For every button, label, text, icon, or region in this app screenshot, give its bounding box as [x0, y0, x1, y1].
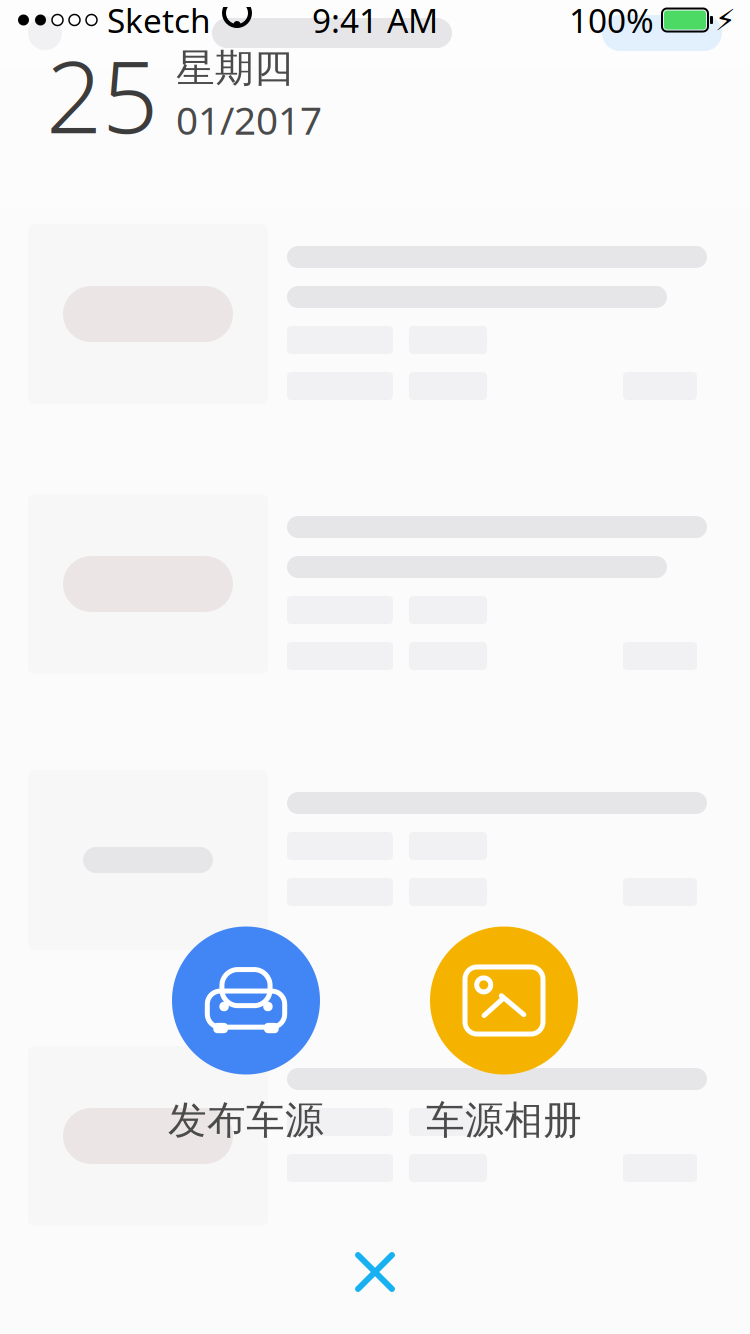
button[interactable]: 关闭: [331, 1228, 419, 1316]
staticText: 发布车源: [168, 1096, 324, 1144]
staticText: 车源相册: [426, 1096, 582, 1144]
staticText: 01/2017: [176, 94, 322, 145]
button[interactable]: 发布车源: [136, 926, 356, 1144]
staticText: 25: [46, 29, 158, 160]
staticText: 100%: [569, 0, 654, 42]
staticText: 9:41 AM: [312, 0, 438, 42]
staticText: ⚡︎: [715, 3, 736, 37]
staticText: 星期四: [176, 45, 293, 92]
button[interactable]: 车源相册: [394, 926, 614, 1144]
staticText: Sketch: [107, 0, 211, 42]
